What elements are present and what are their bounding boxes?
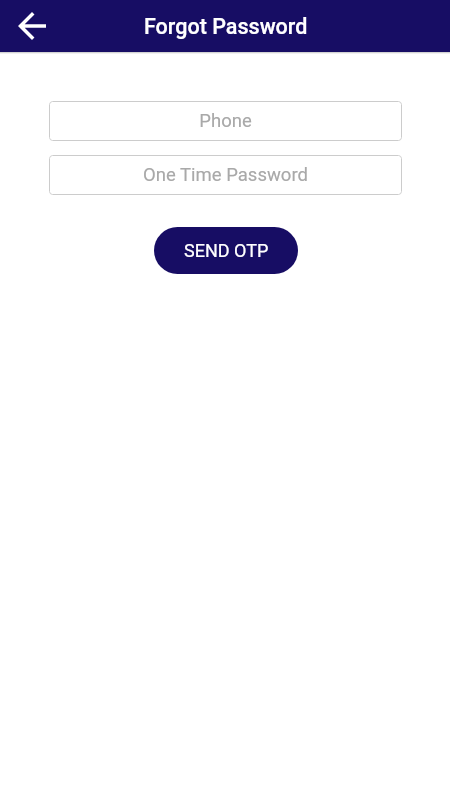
button[interactable]: Phone <box>49 101 402 141</box>
staticText: SEND OTP <box>184 240 269 261</box>
staticText: Phone <box>199 110 252 132</box>
button[interactable]: Back <box>9 3 55 49</box>
staticText: One Time Password <box>143 164 308 186</box>
button[interactable]: SEND OTP <box>154 227 298 274</box>
staticText: Forgot Password <box>144 14 308 39</box>
button[interactable]: One Time Password <box>49 155 402 195</box>
